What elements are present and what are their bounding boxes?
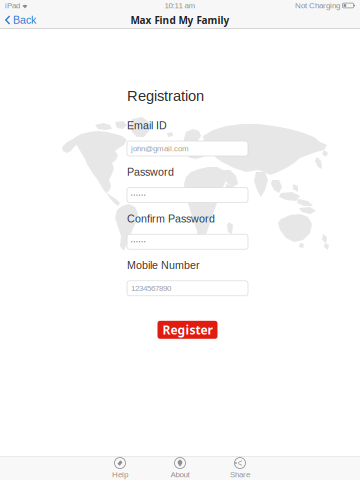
button[interactable]: Back bbox=[0, 11, 41, 29]
button[interactable]: Share bbox=[217, 457, 263, 479]
button[interactable]: Help bbox=[97, 457, 143, 479]
staticText: Confirm Password bbox=[127, 213, 215, 225]
staticText: john@gmail.com bbox=[131, 144, 189, 153]
staticText: Share bbox=[230, 470, 250, 479]
staticText: Help bbox=[112, 470, 128, 479]
button[interactable]: Register bbox=[157, 321, 217, 339]
staticText: Max Find My Family bbox=[130, 13, 229, 27]
button[interactable]: About bbox=[157, 457, 203, 479]
staticText: iPad bbox=[5, 1, 20, 10]
staticText: 10:11 am bbox=[164, 1, 195, 10]
staticText: Back bbox=[13, 14, 36, 26]
staticText: Registration bbox=[127, 88, 204, 104]
staticText: 1234567890 bbox=[131, 284, 171, 293]
staticText: Mobile Number bbox=[127, 259, 200, 271]
staticText: Register bbox=[162, 322, 212, 338]
staticText: Not Charging bbox=[295, 1, 340, 10]
staticText: About bbox=[170, 470, 189, 479]
staticText: Password bbox=[127, 166, 174, 178]
staticText: Email ID bbox=[127, 119, 167, 131]
